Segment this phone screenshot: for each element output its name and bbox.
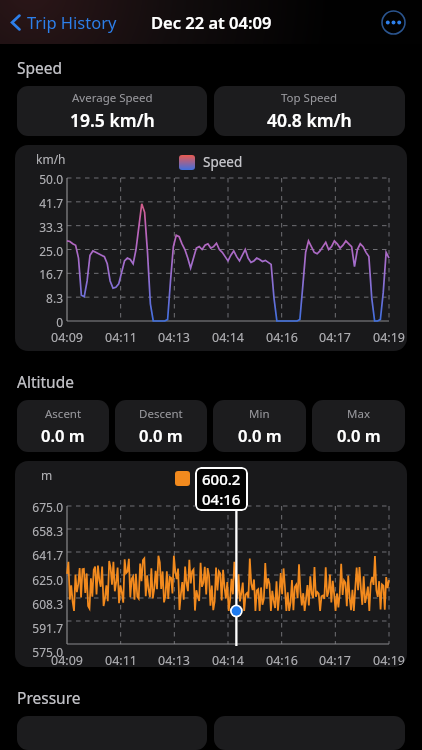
staticText: 625.0 <box>15 572 63 588</box>
staticText: 04:19 <box>367 329 407 346</box>
staticText: 575.0 <box>15 644 63 660</box>
staticText: 04:17 <box>313 652 357 667</box>
staticText: Min <box>249 406 270 422</box>
staticText: 0.0 m <box>41 424 85 446</box>
staticText: Max <box>347 406 370 422</box>
staticText: Descent <box>139 406 183 422</box>
staticText: 675.0 <box>15 499 63 515</box>
staticText: 600.2 <box>202 469 241 489</box>
button[interactable]: Max <box>312 400 405 452</box>
staticText: 04:19 <box>367 652 407 667</box>
button[interactable]: Ascent <box>17 400 109 452</box>
staticText: 33.3 <box>15 219 63 235</box>
staticText: 04:13 <box>152 329 196 346</box>
staticText: 04:16 <box>260 652 304 667</box>
staticText: 658.3 <box>15 523 63 539</box>
staticText: 0.0 m <box>139 424 183 446</box>
staticText: km/h <box>36 151 66 167</box>
staticText: 8.3 <box>15 290 63 306</box>
staticText: Speed <box>203 153 243 171</box>
staticText: 04:11 <box>99 652 143 667</box>
staticText: 608.3 <box>15 596 63 612</box>
staticText: 19.5 km/h <box>70 108 155 132</box>
button[interactable]: More options <box>381 10 406 35</box>
button[interactable]: Top Speed <box>214 86 405 136</box>
staticText: 04:09 <box>45 652 89 667</box>
staticText: Average Speed <box>72 90 153 106</box>
staticText: 591.7 <box>15 620 63 636</box>
staticText: 04:14 <box>206 652 250 667</box>
staticText: 50.0 <box>15 171 63 187</box>
button[interactable]: Altitude <box>15 461 407 667</box>
button[interactable]: Descent <box>115 400 207 452</box>
staticText: 0.0 m <box>337 424 381 446</box>
staticText: Altitude <box>17 371 74 392</box>
button[interactable]: Trip History <box>9 5 117 39</box>
staticText: 04:16 <box>202 489 241 509</box>
staticText: Pressure <box>17 687 81 708</box>
button[interactable] <box>17 716 207 750</box>
button[interactable]: Speed <box>15 145 407 351</box>
staticText: 25.0 <box>15 243 63 259</box>
staticText: Top Speed <box>281 90 338 106</box>
staticText: Altitude <box>198 469 248 487</box>
staticText: Trip History <box>27 11 117 33</box>
staticText: Ascent <box>45 406 82 422</box>
staticText: 04:13 <box>152 652 196 667</box>
staticText: Speed <box>17 57 63 78</box>
staticText: 04:09 <box>45 329 89 346</box>
staticText: Dec 22 at 04:09 <box>151 11 272 33</box>
staticText: 0 <box>15 314 63 330</box>
staticText: 04:16 <box>260 329 304 346</box>
staticText: 16.7 <box>15 266 63 282</box>
button[interactable]: Average Speed <box>17 86 207 136</box>
staticText: 0.0 m <box>238 424 282 446</box>
button[interactable]: Min <box>213 400 306 452</box>
staticText: 641.7 <box>15 547 63 563</box>
staticText: m <box>41 467 53 483</box>
staticText: 04:11 <box>99 329 143 346</box>
staticText: 04:17 <box>313 329 357 346</box>
staticText: 41.7 <box>15 195 63 211</box>
button[interactable] <box>214 716 405 750</box>
staticText: 40.8 km/h <box>267 108 352 132</box>
staticText: 04:14 <box>206 329 250 346</box>
